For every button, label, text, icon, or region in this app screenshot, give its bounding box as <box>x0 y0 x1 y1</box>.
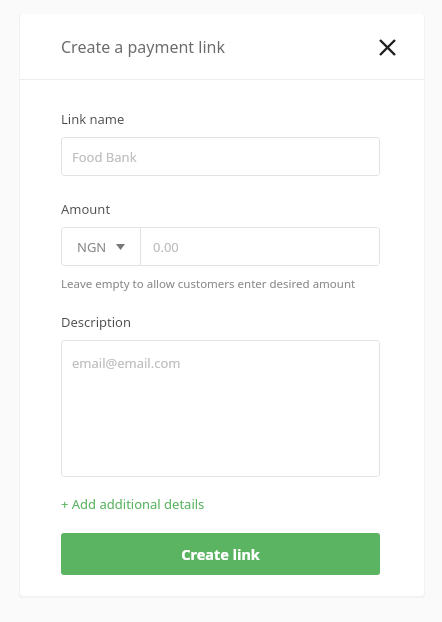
button[interactable]: NGN <box>61 227 140 266</box>
staticText: Leave empty to allow customers enter des… <box>61 276 356 292</box>
staticText: Create a payment link <box>61 36 225 58</box>
button[interactable]: Food Bank <box>61 137 380 176</box>
staticText: Link name <box>61 110 125 128</box>
staticText: + Add additional details <box>61 495 205 513</box>
staticText: Description <box>61 313 131 331</box>
staticText: Create link <box>181 544 260 564</box>
button[interactable]: 0.00 <box>141 227 380 266</box>
staticText: Amount <box>61 200 111 218</box>
button[interactable]: Close <box>370 30 404 64</box>
staticText: NGN <box>77 238 107 256</box>
button[interactable]: + Add additional details <box>61 495 205 513</box>
staticText: Food Bank <box>72 148 137 166</box>
staticText: 0.00 <box>153 238 179 256</box>
staticText: email@email.com <box>72 354 181 372</box>
button[interactable]: Create link <box>61 533 380 575</box>
button[interactable]: email@email.com <box>61 340 380 477</box>
